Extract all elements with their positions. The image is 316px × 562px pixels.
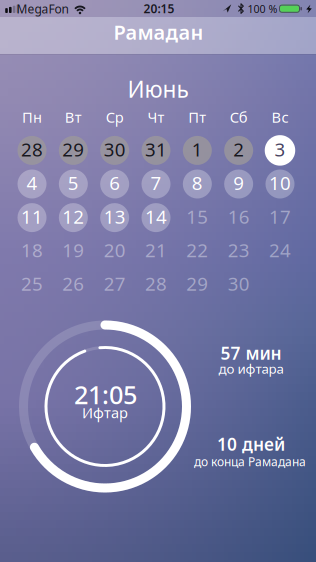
staticText: Июнь xyxy=(127,74,188,104)
button[interactable]: 25 xyxy=(15,269,49,301)
staticText: 8 xyxy=(192,170,203,195)
staticText: 19 xyxy=(62,238,84,262)
staticText: 4 xyxy=(26,170,37,195)
staticText: 14 xyxy=(145,204,167,229)
staticText: 57 мин xyxy=(220,341,281,364)
button[interactable]: 22 xyxy=(180,235,214,267)
button[interactable]: 11 xyxy=(15,202,49,234)
staticText: 5 xyxy=(68,170,79,195)
staticText: 29 xyxy=(186,271,208,296)
staticText: 29 xyxy=(62,137,84,162)
button[interactable]: 24 xyxy=(263,235,297,267)
button[interactable]: 23 xyxy=(222,235,256,267)
staticText: 18 xyxy=(21,238,43,262)
staticText: 20 xyxy=(104,238,126,262)
button[interactable]: 9 xyxy=(222,168,256,200)
staticText: 30 xyxy=(228,271,250,296)
button[interactable]: 6 xyxy=(98,168,132,200)
staticText: 10 дней xyxy=(217,432,285,455)
staticText: 2 xyxy=(233,137,244,162)
button[interactable]: 27 xyxy=(98,269,132,301)
staticText: Ифтар xyxy=(82,403,128,422)
staticText: 1 xyxy=(192,137,203,162)
button[interactable]: 29 xyxy=(56,134,90,166)
button[interactable]: 7 xyxy=(139,168,173,200)
staticText: 16 xyxy=(228,204,250,229)
staticText: 9 xyxy=(233,170,244,195)
staticText: 30 xyxy=(104,137,126,162)
button[interactable]: 20 xyxy=(98,235,132,267)
button[interactable]: 29 xyxy=(180,269,214,301)
button[interactable]: 18 xyxy=(15,235,49,267)
button[interactable]: 5 xyxy=(56,168,90,200)
button[interactable]: 2 xyxy=(222,134,256,166)
button[interactable]: 12 xyxy=(56,202,90,234)
button[interactable]: 17 xyxy=(263,202,297,234)
staticText: Рамадан xyxy=(113,19,203,45)
staticText: 21 xyxy=(145,238,167,262)
staticText: Пт xyxy=(188,107,206,127)
staticText: 11 xyxy=(21,204,43,229)
button[interactable]: 31 xyxy=(139,134,173,166)
button[interactable]: 28 xyxy=(139,269,173,301)
staticText: 24 xyxy=(269,238,291,262)
staticText: 15 xyxy=(186,204,208,229)
button[interactable]: 10 xyxy=(263,168,297,200)
staticText: Ср xyxy=(106,107,124,127)
staticText: Вс xyxy=(271,107,288,127)
button[interactable]: 14 xyxy=(139,202,173,234)
staticText: Вт xyxy=(65,107,82,127)
button[interactable]: 16 xyxy=(222,202,256,234)
staticText: 27 xyxy=(104,271,126,296)
staticText: MegaFon xyxy=(16,1,68,17)
button[interactable]: 19 xyxy=(56,235,90,267)
staticText: 17 xyxy=(269,204,291,229)
staticText: 21:05 xyxy=(74,378,137,411)
staticText: 31 xyxy=(145,137,167,162)
staticText: Сб xyxy=(230,107,248,127)
button[interactable]: 13 xyxy=(98,202,132,234)
staticText: до конца Рамадана xyxy=(194,453,306,469)
staticText: 20:15 xyxy=(143,0,174,16)
staticText: Пн xyxy=(22,107,42,127)
staticText: 26 xyxy=(62,271,84,296)
button[interactable]: 28 xyxy=(15,134,49,166)
button[interactable]: 8 xyxy=(180,168,214,200)
button[interactable]: 21 xyxy=(139,235,173,267)
button[interactable]: 30 xyxy=(222,269,256,301)
staticText: до ифтара xyxy=(218,360,283,377)
button[interactable]: 3 xyxy=(263,134,297,166)
staticText: 25 xyxy=(21,271,43,296)
staticText: 12 xyxy=(62,204,84,229)
staticText: 13 xyxy=(104,204,126,229)
button[interactable]: 4 xyxy=(15,168,49,200)
button[interactable]: 1 xyxy=(180,134,214,166)
staticText: 28 xyxy=(145,271,167,296)
staticText: 6 xyxy=(109,170,120,195)
staticText: 7 xyxy=(150,170,161,195)
staticText: 28 xyxy=(21,137,43,162)
button[interactable]: 30 xyxy=(98,134,132,166)
staticText: Чт xyxy=(147,107,164,127)
button[interactable]: 26 xyxy=(56,269,90,301)
staticText: 10 xyxy=(269,170,291,195)
staticText: 23 xyxy=(228,238,250,262)
staticText: 22 xyxy=(186,238,208,262)
staticText: 3 xyxy=(274,137,285,162)
button[interactable]: 15 xyxy=(180,202,214,234)
staticText: 100 % xyxy=(247,2,277,16)
